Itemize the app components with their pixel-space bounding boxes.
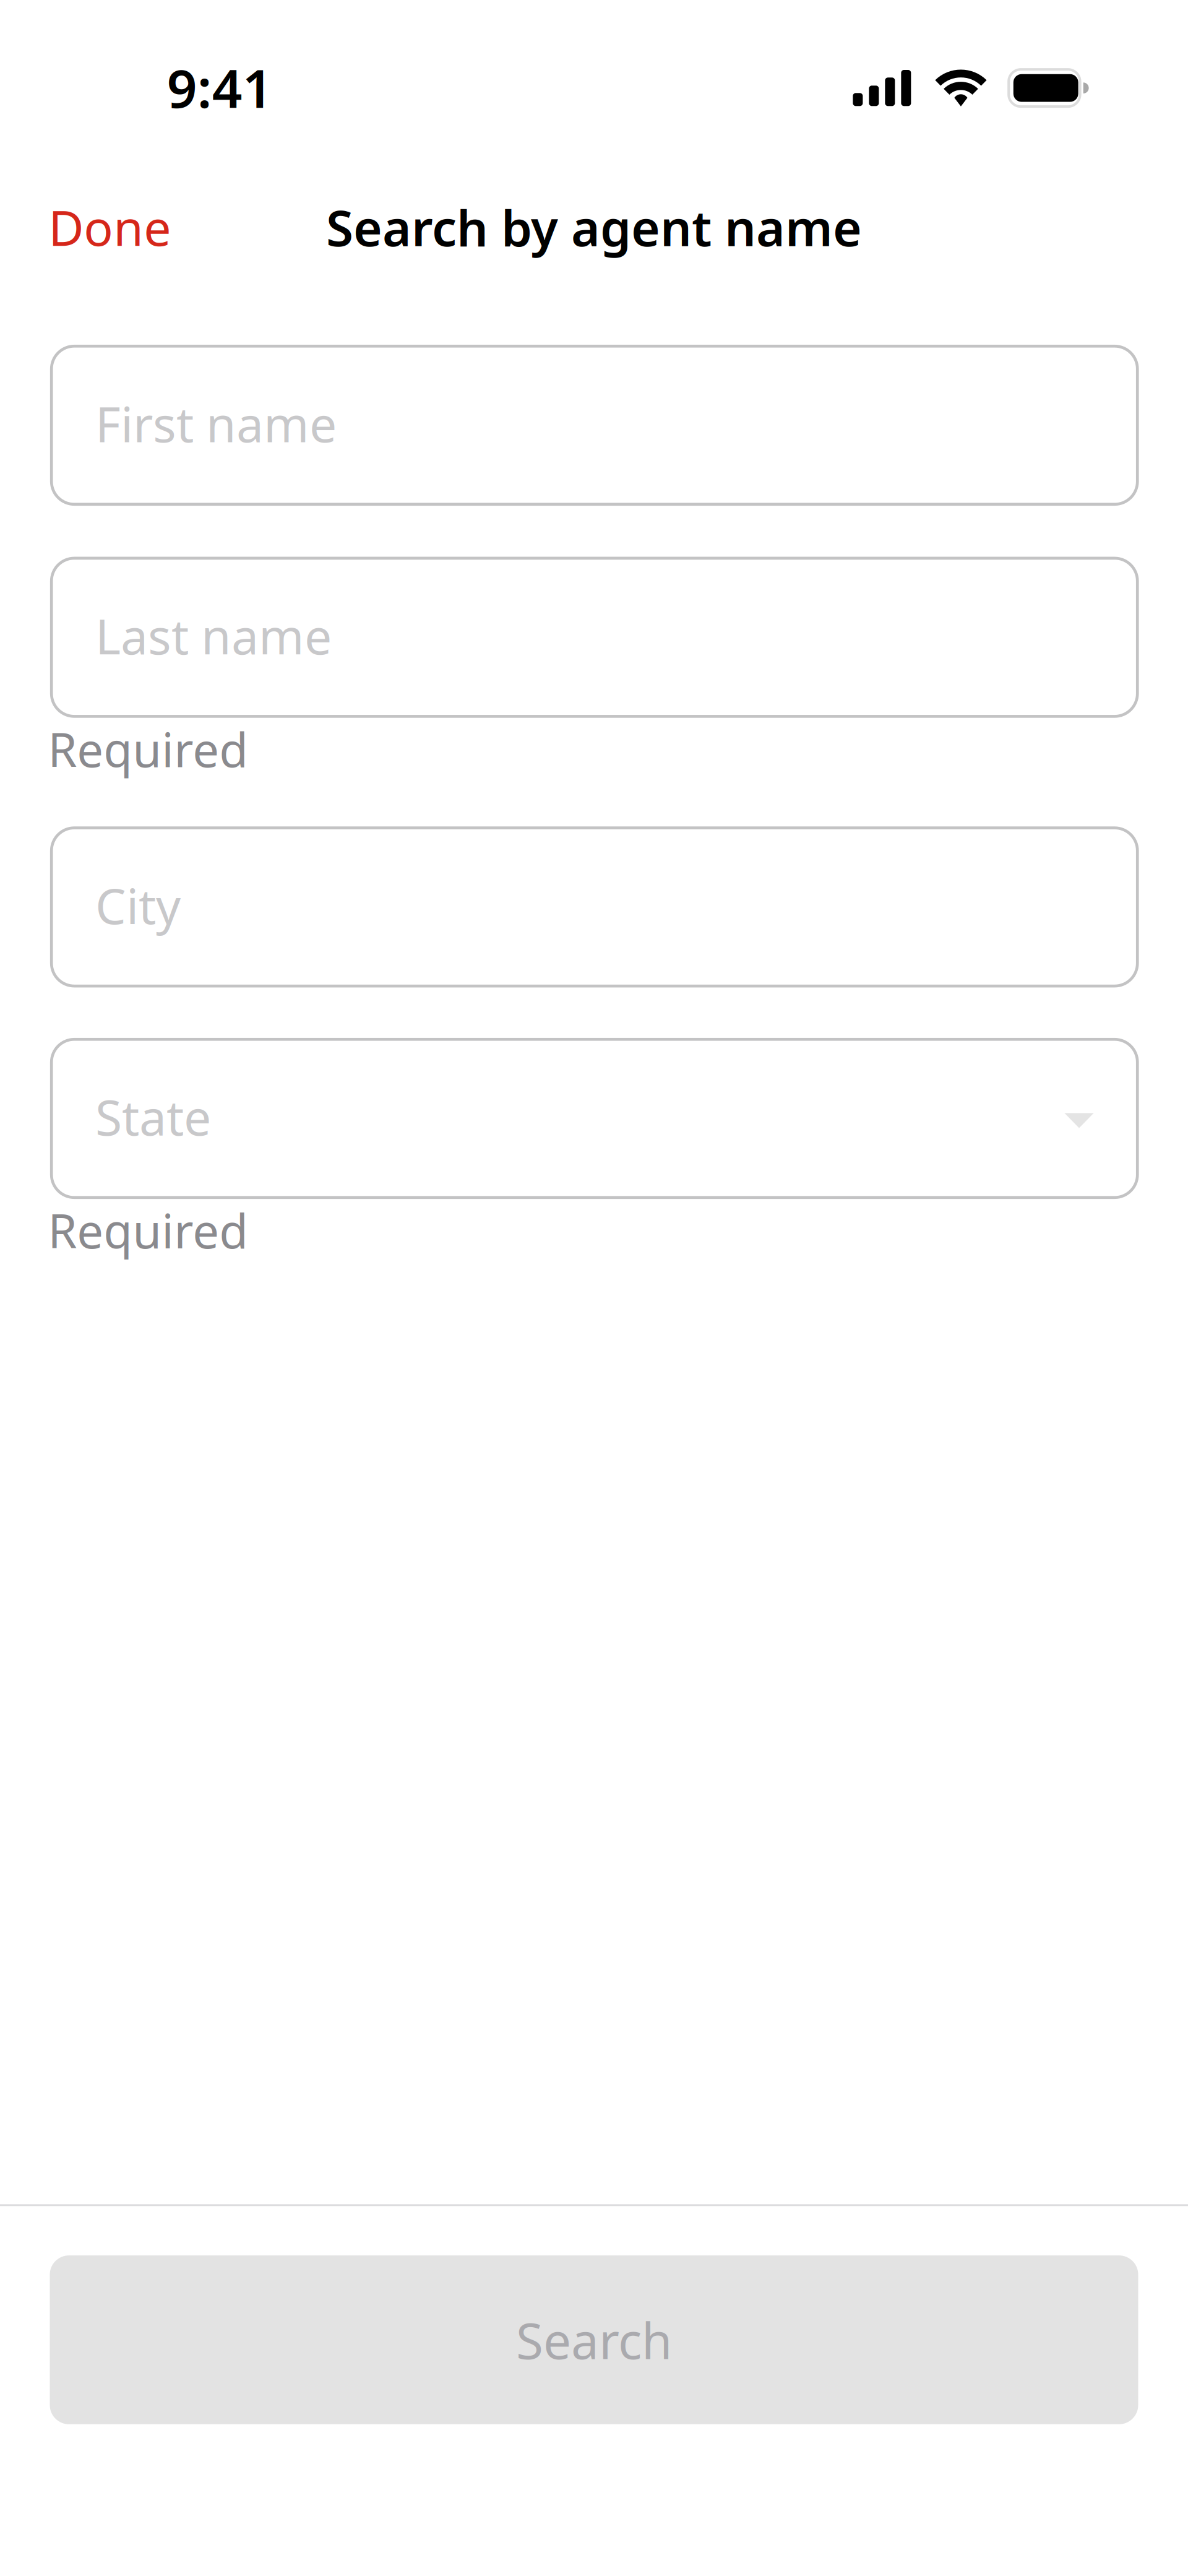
staticText: Search by agent name [326,194,862,260]
button[interactable]: Last name [51,558,1137,716]
button[interactable]: State [51,1039,1137,1198]
staticText: Required [48,1199,248,1261]
button[interactable]: First name [51,346,1137,504]
staticText: 9:41 [167,52,273,122]
button[interactable]: City [51,828,1137,986]
staticText: Search [516,2307,672,2373]
staticText: Done [48,195,171,259]
button[interactable]: Done [0,160,208,294]
staticText: Last name [95,603,332,668]
staticText: State [95,1084,211,1149]
button[interactable]: Search [50,2255,1138,2424]
staticText: Required [48,718,248,780]
staticText: First name [95,391,337,456]
staticText: City [95,873,181,937]
